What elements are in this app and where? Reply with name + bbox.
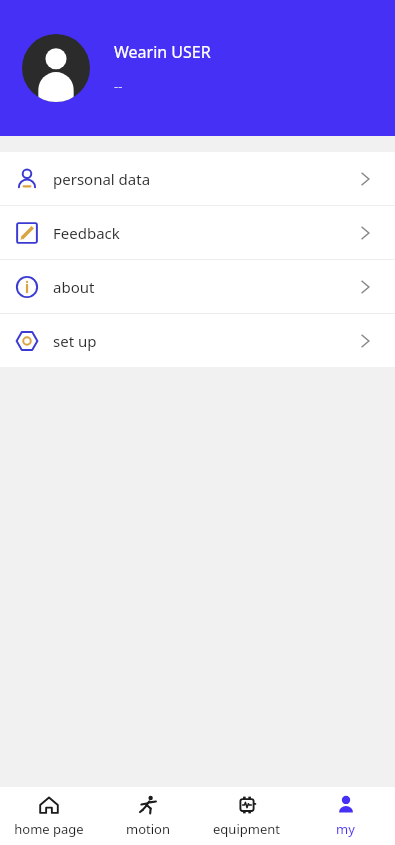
staticText: Feedback <box>53 223 357 243</box>
button[interactable]: my <box>296 787 395 845</box>
button[interactable]: personal data <box>0 152 395 205</box>
button[interactable]: about <box>0 260 395 313</box>
button[interactable]: motion <box>98 787 197 845</box>
button[interactable]: set up <box>0 314 395 367</box>
staticText: motion <box>126 820 170 838</box>
staticText: equipment <box>213 820 280 838</box>
button[interactable]: Profile photo <box>22 34 90 102</box>
button[interactable]: Feedback <box>0 206 395 259</box>
staticText: -- <box>114 77 123 95</box>
staticText: personal data <box>53 169 357 189</box>
staticText: about <box>53 277 357 297</box>
staticText: set up <box>53 331 357 351</box>
button[interactable]: equipment <box>197 787 296 845</box>
button[interactable]: home page <box>0 787 98 845</box>
staticText: home page <box>14 820 84 838</box>
staticText: my <box>336 820 355 838</box>
staticText: Wearin USER <box>114 41 211 63</box>
